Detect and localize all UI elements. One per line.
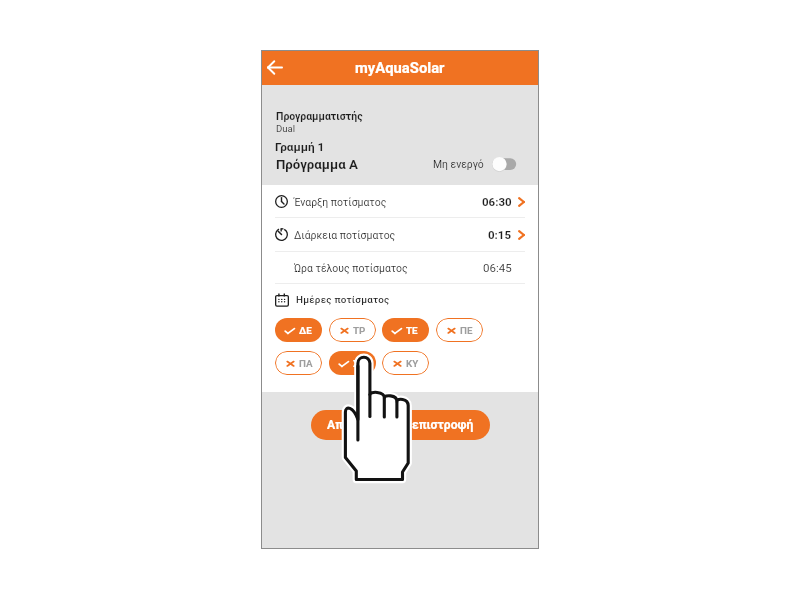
button[interactable]: Αποθήκευση & επιστροφή: [311, 410, 490, 440]
button[interactable]: Ημέρες ποτίσματος: [261, 283, 539, 313]
staticText: ΠΕ: [460, 325, 473, 336]
staticText: 0:15: [488, 228, 512, 241]
button[interactable]: ΠΕ: [436, 318, 483, 342]
button[interactable]: ΠΑ: [275, 351, 322, 375]
staticText: 06:30: [482, 195, 512, 208]
staticText: Μη ενεργό: [433, 158, 484, 170]
staticText: myAquaSolar: [355, 59, 445, 76]
staticText: Έναρξη ποτίσματος: [294, 196, 387, 208]
staticText: Ημέρες ποτίσματος: [296, 294, 390, 305]
staticText: ΤΡ: [353, 325, 366, 336]
button[interactable]: Program active toggle: [489, 154, 519, 174]
staticText: Dual: [276, 123, 296, 134]
button[interactable]: ΤΕ: [382, 318, 429, 342]
staticText: ΤΕ: [406, 325, 418, 336]
button[interactable]: Διάρκεια ποτίσματος: [261, 218, 539, 251]
button[interactable]: ΣΑ: [329, 351, 376, 375]
staticText: ΚΥ: [406, 358, 419, 369]
staticText: Γραμμή 1: [275, 140, 325, 154]
staticText: Ώρα τέλους ποτίσματος: [294, 262, 408, 274]
staticText: Πρόγραμμα Α: [276, 157, 358, 173]
button[interactable]: Ώρα τέλους ποτίσματος: [261, 251, 539, 284]
staticText: ΣΑ: [353, 358, 366, 369]
button[interactable]: ΚΥ: [382, 351, 429, 375]
button[interactable]: Back: [262, 53, 288, 82]
staticText: Αποθήκευση & επιστροφή: [327, 418, 474, 432]
staticText: ΔΕ: [299, 325, 312, 336]
staticText: 06:45: [483, 261, 512, 274]
staticText: ΠΑ: [299, 358, 313, 369]
button[interactable]: ΔΕ: [275, 318, 322, 342]
button[interactable]: Έναρξη ποτίσματος: [261, 185, 539, 218]
button[interactable]: ΤΡ: [329, 318, 376, 342]
staticText: Διάρκεια ποτίσματος: [294, 229, 396, 241]
staticText: Προγραμματιστής: [276, 110, 363, 122]
